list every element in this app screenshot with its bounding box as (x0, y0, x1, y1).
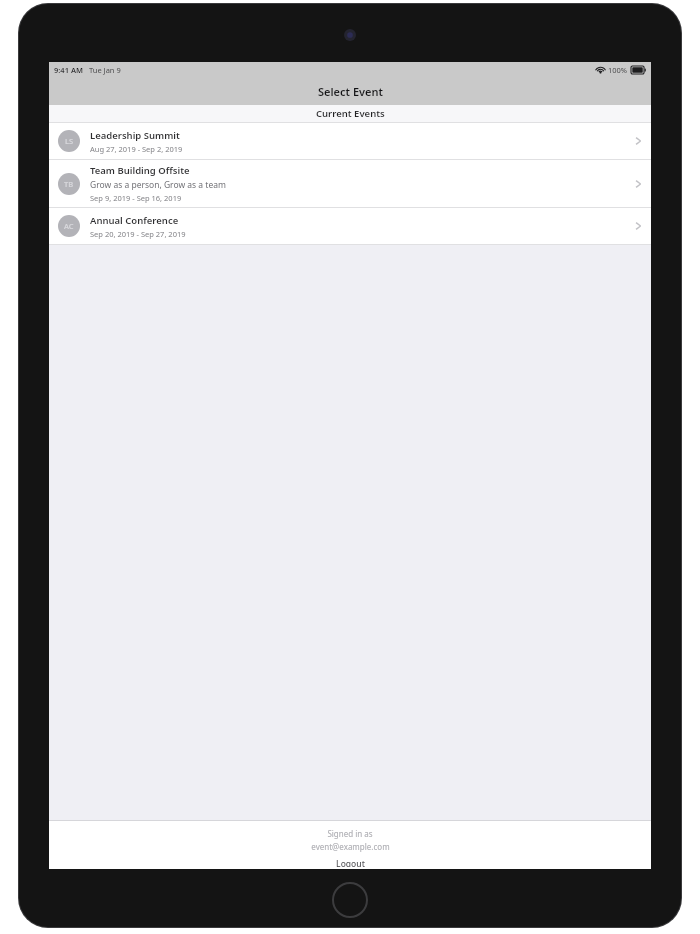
staticText: Select Event (318, 84, 383, 99)
other: Open Leadership Summit (635, 135, 642, 147)
staticText: 100% (608, 65, 628, 75)
button[interactable]: Logout (320, 856, 381, 869)
staticText: Annual Conference (90, 214, 179, 227)
staticText: Team Building Offsite (90, 164, 190, 177)
staticText: Grow as a person, Grow as a team (90, 179, 226, 191)
button[interactable]: TB (49, 160, 651, 207)
staticText: LS (65, 136, 74, 146)
staticText: TB (64, 179, 74, 189)
staticText: Sep 9, 2019 - Sep 16, 2019 (90, 193, 182, 203)
staticText: Leadership Summit (90, 129, 180, 142)
staticText: Sep 20, 2019 - Sep 27, 2019 (90, 229, 186, 239)
staticText: Tue Jan 9 (89, 65, 121, 75)
other: Open Annual Conference (635, 220, 642, 232)
button[interactable]: LS (49, 123, 651, 159)
other: Open Team Building Offsite (635, 178, 642, 190)
staticText: Aug 27, 2019 - Sep 2, 2019 (90, 144, 183, 154)
button[interactable]: AC (49, 208, 651, 244)
staticText: event@example.com (311, 841, 390, 852)
staticText: AC (64, 221, 74, 231)
staticText: 9:41 AM (54, 65, 83, 75)
staticText: Signed in as (327, 828, 373, 839)
staticText: Current Events (316, 107, 385, 120)
staticText: Logout (336, 858, 365, 867)
